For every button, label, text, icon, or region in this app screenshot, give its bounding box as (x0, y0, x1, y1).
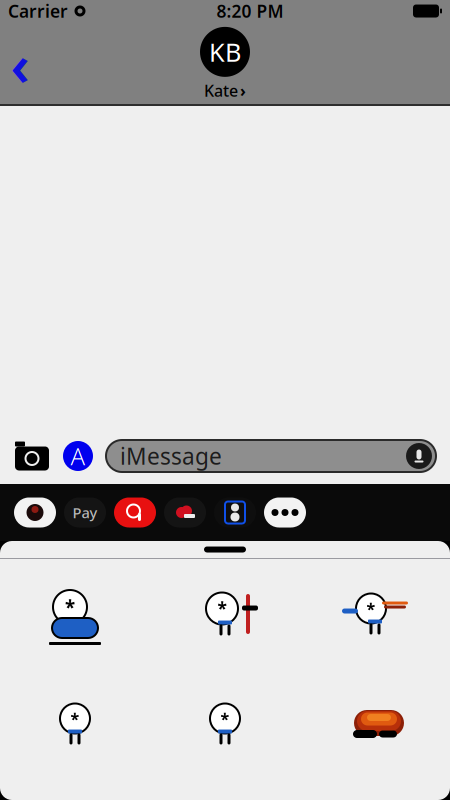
staticText: * (217, 597, 226, 620)
staticText: Carrier (8, 0, 68, 22)
button[interactable]: Camera (14, 441, 50, 471)
button[interactable]: Digital Touch (164, 497, 206, 527)
button[interactable]: Animoji (214, 497, 256, 527)
button[interactable]: Kate, contact details (200, 27, 250, 101)
staticText: Kate (204, 80, 238, 101)
staticText: iMessage (120, 441, 222, 471)
button[interactable]: App Store (62, 440, 94, 472)
staticText: 8:20 PM (216, 0, 283, 22)
staticText: * (65, 595, 75, 619)
staticText: KB (209, 35, 241, 69)
button[interactable]: Blowing sticker (342, 583, 408, 645)
staticText: ‹ (10, 27, 29, 101)
staticText: Pay (72, 503, 97, 522)
button[interactable]: More apps (264, 497, 306, 527)
button[interactable]: Dictate (405, 442, 433, 470)
button[interactable]: Bath sticker (42, 583, 108, 645)
button[interactable]: Recent stickers (14, 497, 56, 527)
button[interactable]: Pole sticker (192, 583, 258, 645)
button[interactable]: Standing sticker two (192, 693, 258, 755)
button[interactable]: Winged sticker (342, 693, 408, 755)
staticText: * (220, 708, 229, 729)
staticText: * (70, 708, 79, 729)
button[interactable]: Images (114, 497, 156, 527)
button[interactable]: Back (0, 41, 40, 87)
staticText: A (70, 440, 85, 472)
button[interactable]: Apple Pay (64, 497, 106, 527)
staticText: * (366, 598, 375, 619)
staticText: › (240, 80, 246, 101)
button[interactable]: Standing sticker (42, 693, 108, 755)
